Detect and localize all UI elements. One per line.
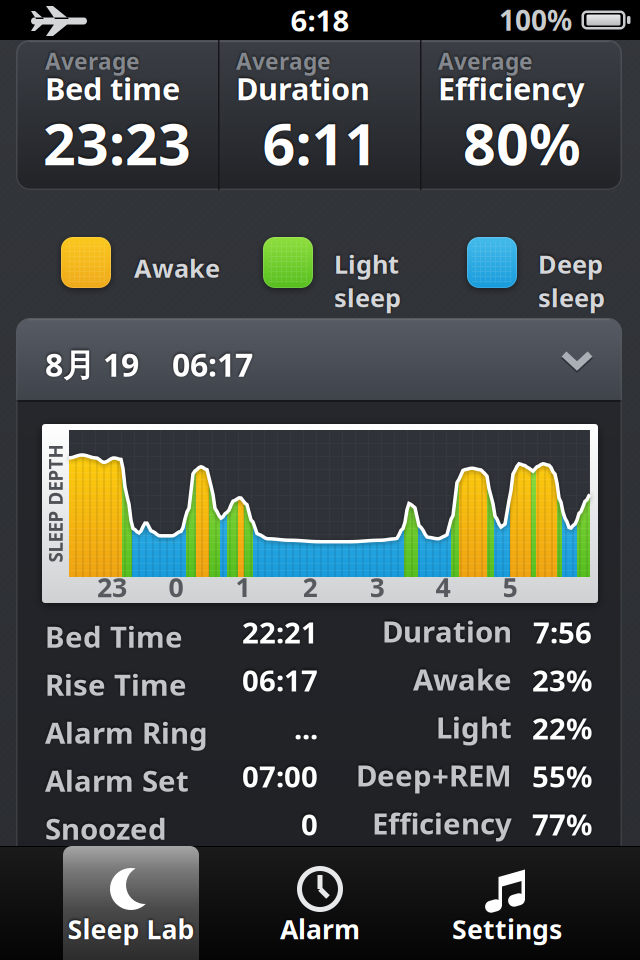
staticText: Sleep Lab	[67, 911, 194, 947]
button[interactable]: Alarm	[252, 846, 388, 960]
staticText: Average	[45, 46, 140, 76]
staticText: Duration	[382, 611, 512, 650]
staticText: 06:17	[172, 343, 253, 385]
staticText: 22%	[532, 708, 592, 747]
staticText: Duration	[236, 68, 370, 109]
staticText: Alarm Set	[45, 761, 189, 800]
staticText: Alarm	[280, 911, 360, 947]
staticText: Awake	[413, 659, 512, 698]
staticText: Deep+REM	[356, 755, 512, 794]
staticText: 4	[435, 569, 450, 605]
staticText: Alarm Ring	[45, 713, 208, 752]
staticText: 07:00	[242, 756, 318, 795]
staticText: Awake	[134, 251, 220, 285]
staticText: Efficiency	[372, 803, 512, 842]
staticText: 23%	[532, 660, 592, 699]
staticText: 23:23	[43, 105, 191, 181]
staticText: 22:21	[242, 612, 318, 651]
staticText: 0	[301, 804, 318, 843]
staticText: 8月 19	[45, 343, 139, 385]
staticText: 77%	[532, 804, 592, 843]
button[interactable]: Settings	[439, 846, 575, 960]
staticText: Settings	[452, 911, 562, 947]
staticText: 06:17	[242, 660, 318, 699]
staticText: 2	[302, 569, 317, 605]
staticText: Light	[436, 707, 512, 746]
staticText: Snoozed	[45, 809, 167, 848]
staticText: sleep	[334, 281, 401, 314]
button[interactable]: 8月 19	[16, 318, 622, 400]
staticText: sleep	[538, 281, 605, 314]
staticText: 0	[168, 569, 183, 605]
staticText: Bed Time	[45, 617, 183, 656]
staticText: Average	[236, 46, 331, 76]
staticText: 55%	[532, 756, 592, 795]
staticText: Bed time	[45, 68, 180, 109]
staticText: Average	[438, 46, 533, 76]
staticText: 7:56	[533, 612, 592, 651]
staticText: ...	[294, 708, 318, 747]
staticText: Deep	[538, 247, 603, 281]
staticText: 23	[97, 569, 127, 605]
staticText: 80%	[463, 105, 581, 181]
staticText: Rise Time	[45, 665, 187, 704]
staticText: 100%	[499, 1, 572, 39]
staticText: SLEEP DEPTH	[0, 491, 114, 516]
staticText: 6:18	[290, 0, 349, 39]
staticText: Efficiency	[438, 68, 585, 109]
staticText: 6:11	[262, 105, 377, 181]
button[interactable]: Sleep Lab	[63, 846, 199, 960]
staticText: Light	[334, 247, 399, 281]
staticText: 1	[235, 569, 250, 605]
staticText: 5	[502, 569, 517, 605]
staticText: 3	[369, 569, 384, 605]
